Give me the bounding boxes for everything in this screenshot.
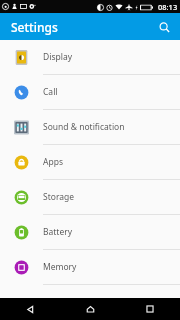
button[interactable]: Home	[60, 298, 120, 320]
button[interactable]: Search	[153, 16, 175, 38]
button[interactable]: Sound & notification	[0, 110, 180, 144]
staticText: Sound & notification	[43, 121, 125, 133]
staticText: Battery	[43, 226, 73, 238]
staticText: Memory	[43, 261, 77, 273]
button[interactable]: Recent apps	[120, 298, 180, 320]
button[interactable]: Storage	[0, 180, 180, 214]
staticText: Storage	[43, 191, 75, 203]
staticText: Settings	[11, 19, 58, 35]
button[interactable]: Back	[0, 298, 60, 320]
staticText: Display	[43, 51, 72, 63]
button[interactable]: Call	[0, 75, 180, 109]
button[interactable]: Display	[0, 40, 180, 74]
button[interactable]: Memory	[0, 250, 180, 284]
staticText: 08:13	[158, 2, 178, 12]
button[interactable]: Battery	[0, 215, 180, 249]
button[interactable]: Apps	[0, 145, 180, 179]
staticText: Apps	[43, 156, 63, 168]
staticText: Call	[43, 86, 58, 98]
